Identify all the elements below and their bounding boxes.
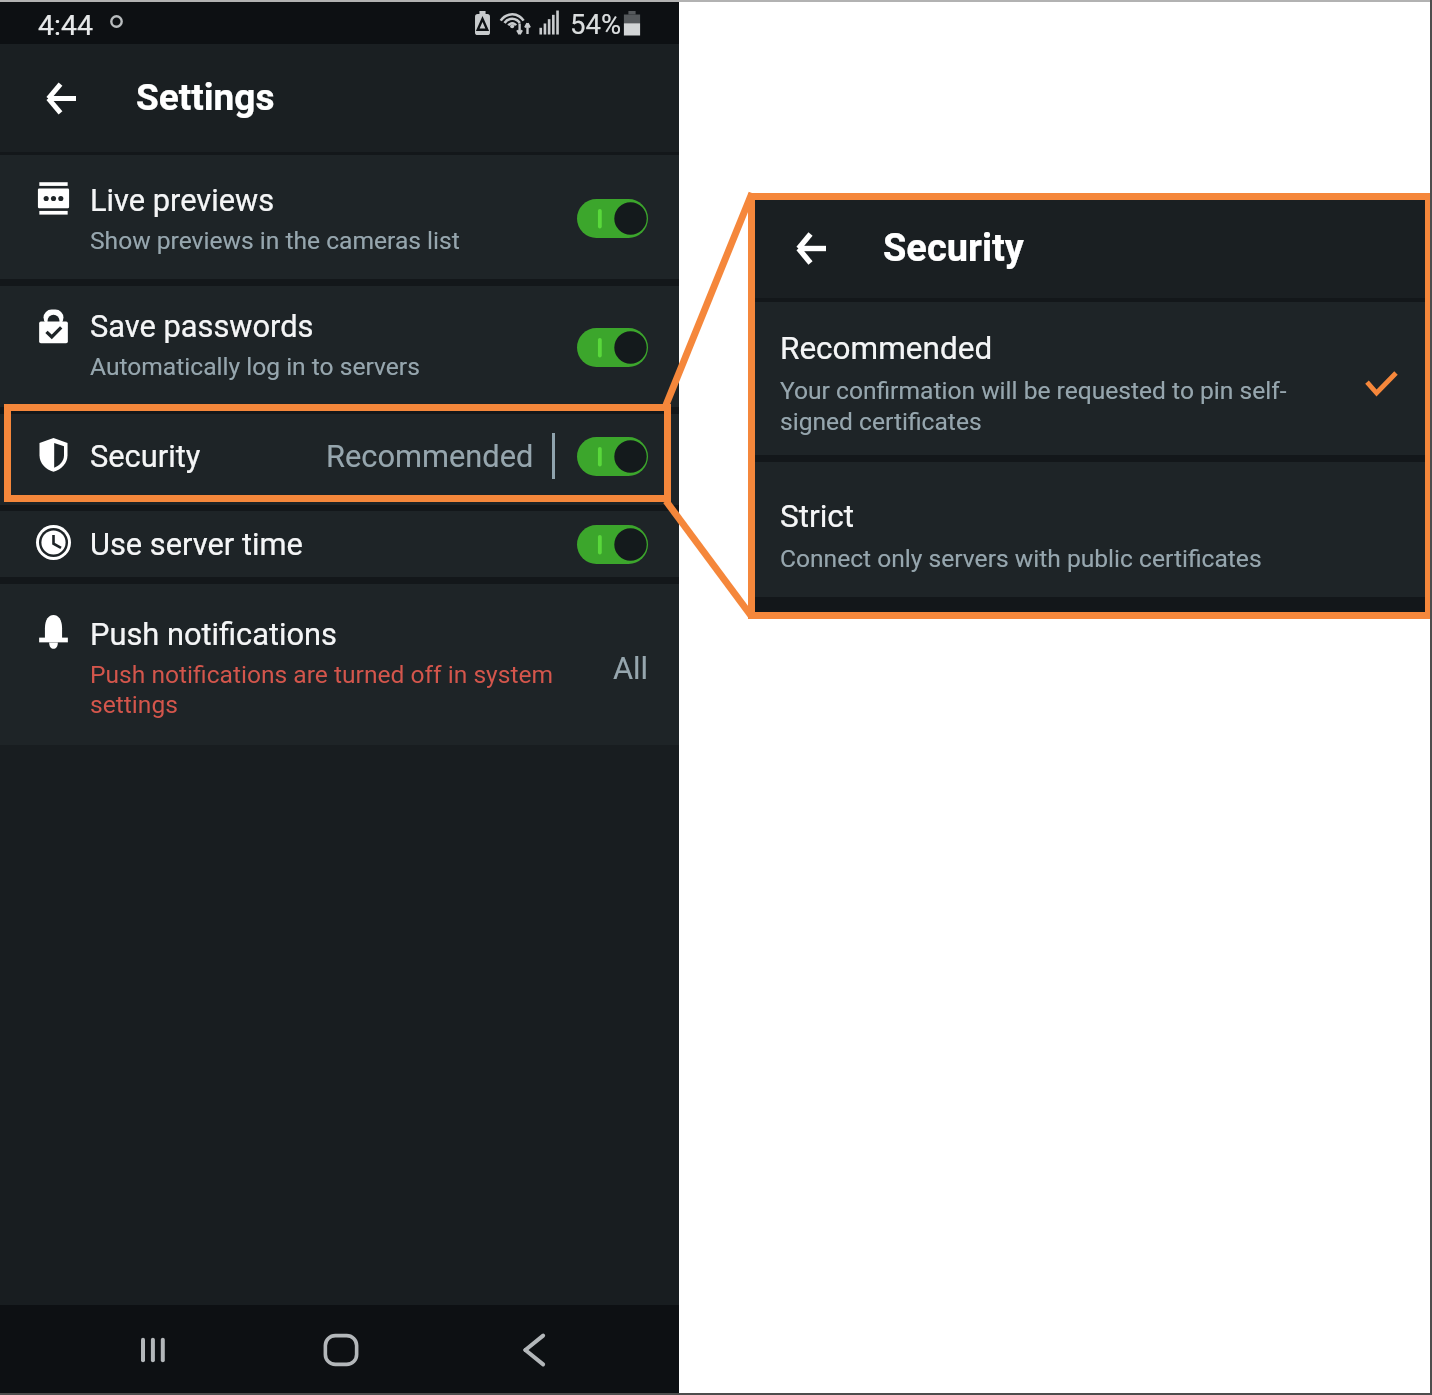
button[interactable]: Use server time toggle, on — [577, 525, 648, 564]
button[interactable]: Recents — [105, 1305, 200, 1395]
staticText: Show previews in the cameras list — [90, 226, 460, 255]
button[interactable]: Save passwords toggle, on — [577, 328, 648, 367]
staticText: Settings — [136, 75, 275, 119]
staticText: Save passwords — [90, 308, 314, 344]
staticText: Your confirmation will be requested to p… — [780, 375, 1292, 437]
button[interactable]: Back — [780, 218, 840, 278]
staticText: Recommended — [326, 438, 534, 474]
button[interactable]: Use server time — [0, 511, 679, 577]
button[interactable]: Home — [293, 1305, 388, 1395]
staticText: Live previews — [90, 182, 275, 218]
button[interactable]: Recommended — [755, 302, 1425, 455]
staticText: 54% — [570, 8, 622, 40]
button[interactable]: Back — [486, 1305, 581, 1395]
staticText: Recommended — [780, 330, 993, 367]
staticText: Security — [90, 438, 201, 474]
button[interactable]: Security — [0, 414, 679, 505]
button[interactable]: Strict — [755, 462, 1425, 597]
staticText: Push notifications are turned off in sys… — [90, 659, 568, 719]
staticText: Automatically log in to servers — [90, 352, 420, 381]
button[interactable]: Save passwords — [0, 286, 679, 407]
staticText: Use server time — [90, 526, 303, 562]
button[interactable]: Back — [30, 68, 91, 129]
button[interactable]: Push notifications — [0, 584, 679, 745]
staticText: Security — [883, 226, 1024, 271]
button[interactable]: Live previews toggle, on — [577, 199, 648, 238]
staticText: Push notifications — [90, 616, 338, 652]
staticText: All — [613, 650, 649, 686]
staticText: Strict — [780, 498, 855, 535]
staticText: 4:44 — [38, 8, 93, 42]
button[interactable]: Live previews — [0, 155, 679, 279]
button[interactable]: Security toggle, on — [577, 437, 648, 476]
staticText: Connect only servers with public certifi… — [780, 544, 1262, 573]
